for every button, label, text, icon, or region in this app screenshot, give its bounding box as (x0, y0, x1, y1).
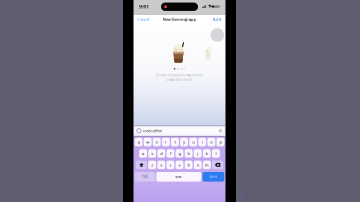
staticText: p (219, 139, 221, 145)
staticText: a (142, 151, 144, 156)
button[interactable]: c (166, 161, 174, 169)
button[interactable]: space (156, 172, 201, 182)
button[interactable]: Add (211, 14, 223, 24)
button[interactable]: q (135, 138, 142, 146)
button[interactable]: h (185, 149, 193, 158)
staticText: 9:41 (139, 3, 149, 10)
button[interactable]: f (166, 149, 174, 158)
staticText: New Genmoji app (162, 16, 196, 22)
staticText: k (206, 151, 208, 156)
staticText: b (188, 162, 190, 167)
button[interactable]: b (185, 161, 193, 169)
button[interactable]: o (207, 138, 215, 146)
staticText: e (156, 139, 158, 145)
staticText: g (178, 151, 180, 156)
staticText: × (219, 128, 221, 133)
staticText: Cancel (137, 16, 149, 22)
button[interactable]: t (171, 138, 179, 146)
staticText: 123 (142, 175, 148, 178)
staticText: t (174, 139, 175, 145)
button[interactable]: n (194, 161, 202, 169)
staticText: m (205, 162, 209, 167)
staticText: z (151, 162, 153, 167)
staticText: c (169, 162, 171, 167)
staticText: y (183, 139, 185, 145)
staticText: x (160, 162, 162, 167)
button[interactable]: d (157, 149, 165, 158)
button[interactable]: g (176, 149, 183, 158)
button[interactable]: a (139, 149, 147, 158)
button[interactable]: s (148, 149, 156, 158)
staticText: s (151, 151, 153, 156)
staticText: Add (213, 16, 222, 22)
staticText: w (146, 139, 149, 145)
button[interactable]: v (176, 161, 183, 169)
button[interactable]: u (189, 138, 197, 146)
button[interactable]: z (148, 161, 156, 169)
button[interactable]: w (144, 138, 152, 146)
button[interactable]: j (194, 149, 202, 158)
button[interactable]: y (180, 138, 188, 146)
staticText: q (137, 139, 139, 145)
staticText: unexpected results. (166, 78, 193, 81)
staticText: v (178, 162, 180, 167)
staticText: Genmoji descriptions may produce (155, 73, 203, 77)
staticText: space (175, 175, 182, 178)
staticText: l (215, 151, 216, 156)
button[interactable]: e (153, 138, 161, 146)
button[interactable]: done (202, 172, 224, 182)
button[interactable]: Dictate (239, 191, 246, 199)
button[interactable]: Delete (212, 161, 223, 169)
staticText: r (165, 139, 167, 145)
staticText: u (192, 139, 194, 145)
staticText: done (209, 175, 217, 178)
button[interactable]: p (216, 138, 224, 146)
button[interactable]: m (203, 161, 211, 169)
staticText: n (197, 162, 199, 167)
staticText: i (202, 139, 203, 145)
button[interactable]: Cancel (136, 14, 151, 24)
staticText: h (188, 151, 190, 156)
staticText: j (197, 151, 198, 156)
staticText: f (170, 151, 171, 156)
button[interactable]: l (212, 149, 220, 158)
button[interactable]: Shift (136, 161, 147, 169)
button[interactable]: i (198, 138, 206, 146)
button[interactable]: r (162, 138, 170, 146)
button[interactable]: iced coffee (134, 127, 224, 134)
button[interactable]: k (203, 149, 211, 158)
staticText: o (210, 139, 212, 145)
staticText: iced coffee (143, 128, 162, 133)
button[interactable]: x (157, 161, 165, 169)
button[interactable]: 123 (135, 172, 155, 182)
staticText: d (160, 151, 162, 156)
